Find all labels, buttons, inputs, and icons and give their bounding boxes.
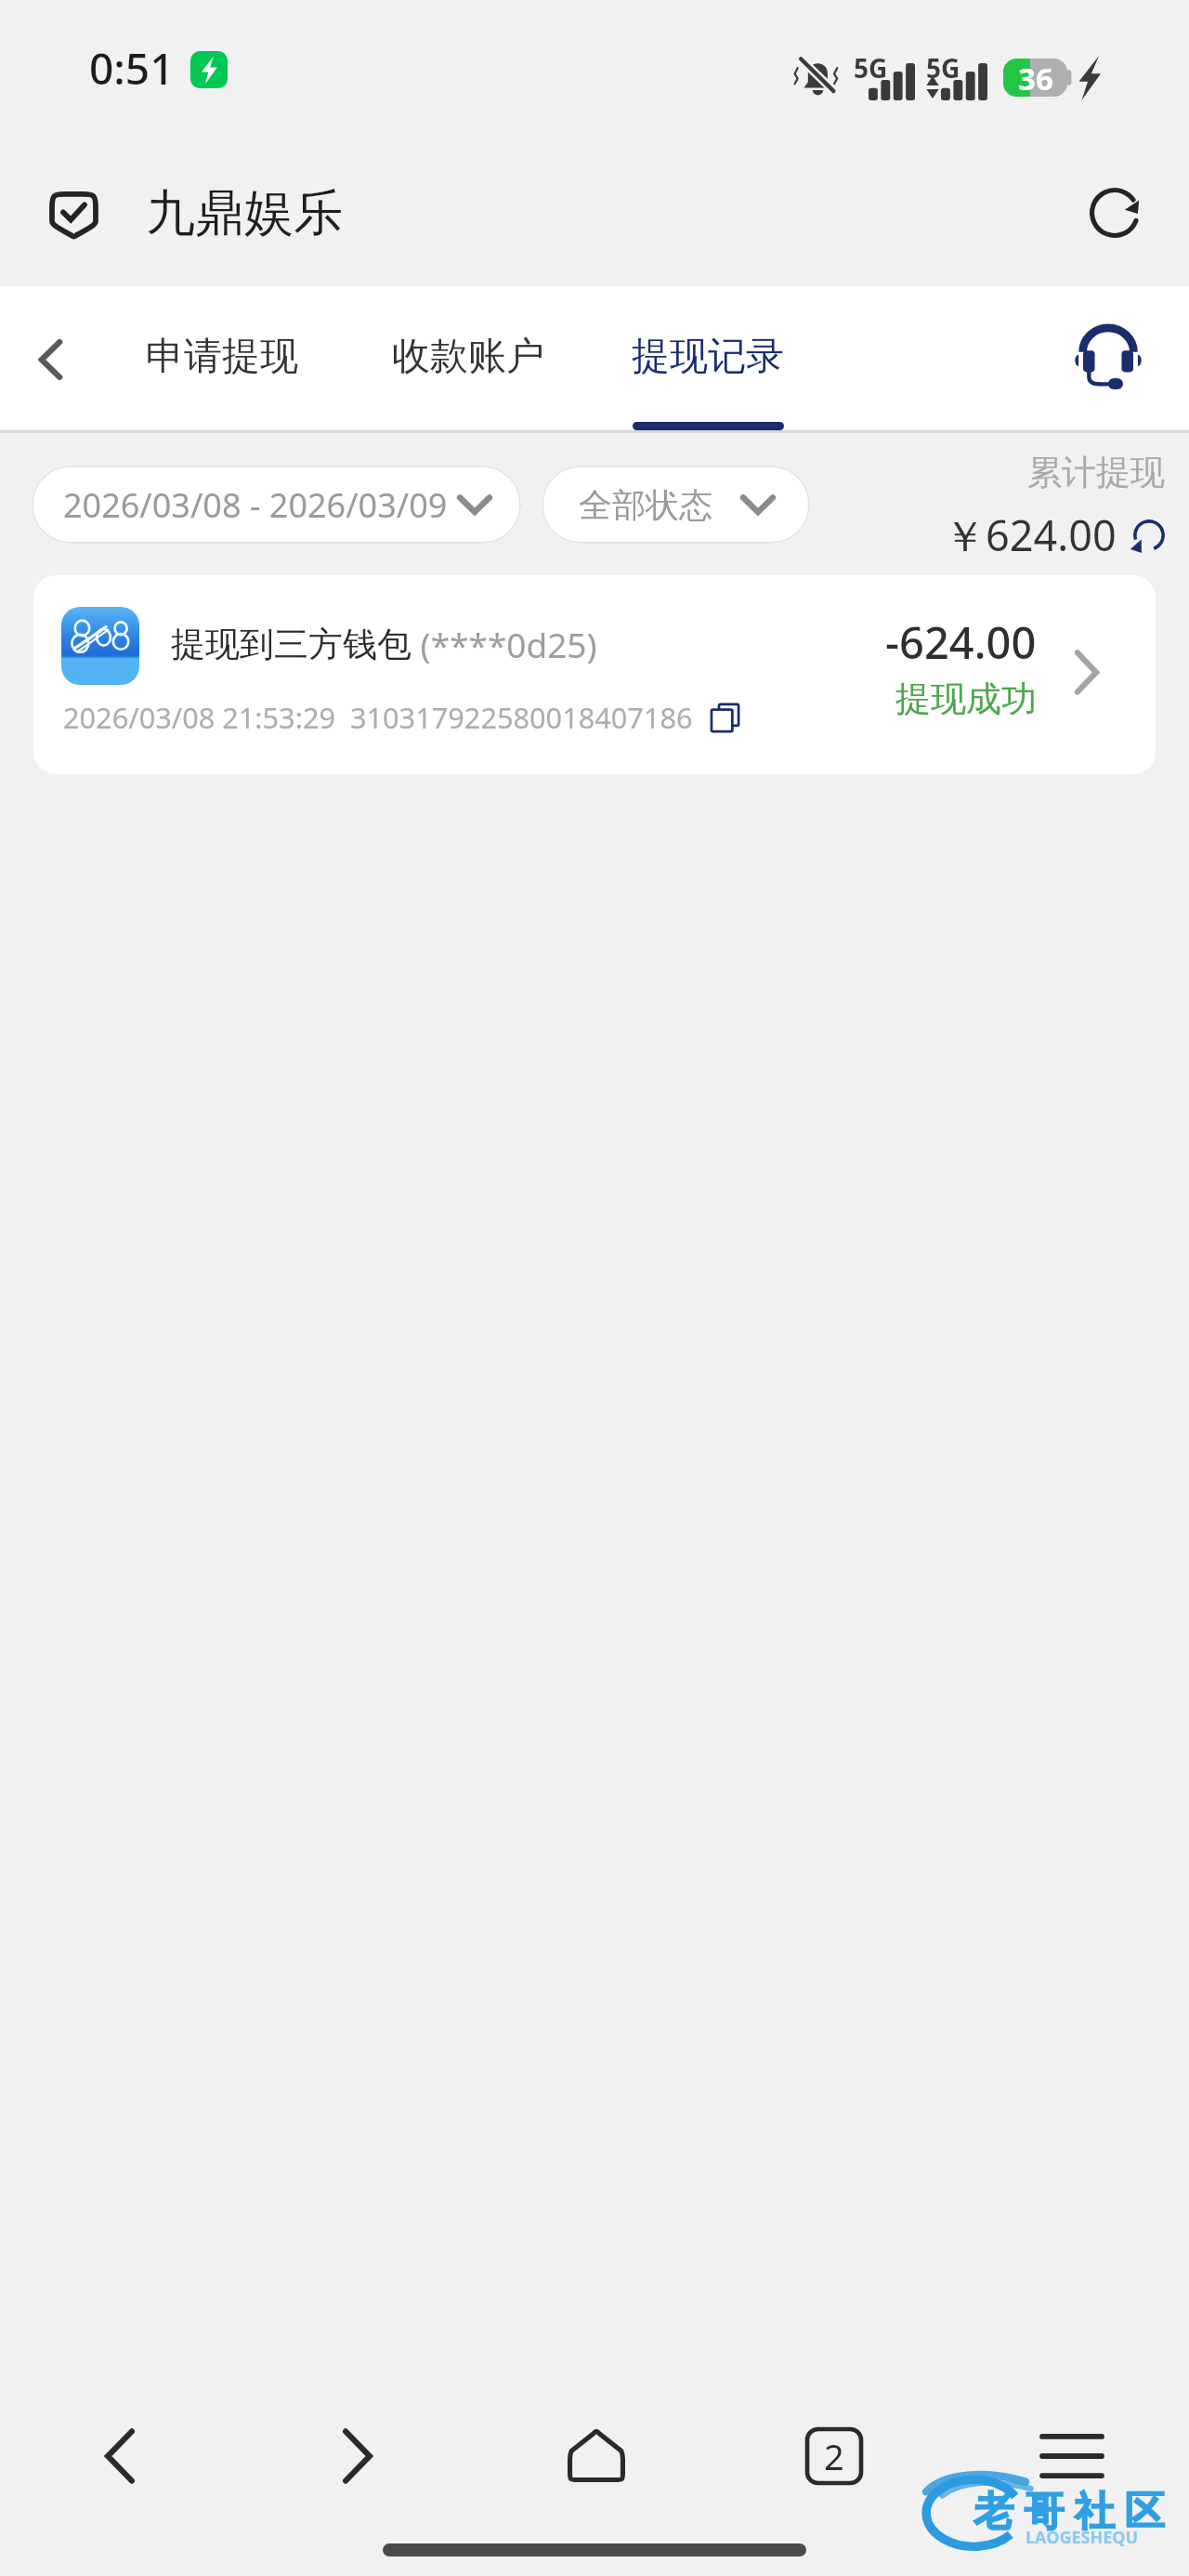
button[interactable]: Tabs bbox=[782, 2396, 886, 2517]
button[interactable]: Menu bbox=[1020, 2396, 1124, 2517]
staticText: 申请提现 bbox=[146, 333, 298, 381]
staticText: 5G bbox=[926, 50, 960, 85]
button[interactable]: Refresh bbox=[1078, 176, 1152, 250]
staticText: 提现到三方钱包 bbox=[171, 623, 412, 666]
staticText: (****0d25) bbox=[412, 621, 597, 667]
staticText: 老哥社区 bbox=[969, 2487, 1169, 2537]
button[interactable]: 收款账户 bbox=[392, 286, 544, 430]
button[interactable]: Customer service bbox=[1066, 317, 1150, 401]
button[interactable]: 2026/03/08 - 2026/03/09 bbox=[32, 466, 521, 544]
staticText: 2026/03/08 - 2026/03/09 bbox=[63, 482, 448, 528]
button[interactable]: Back bbox=[68, 2396, 172, 2517]
staticText: 九鼎娱乐 bbox=[146, 182, 343, 244]
button[interactable]: Back bbox=[13, 322, 87, 397]
staticText: 提现成功 bbox=[895, 677, 1037, 721]
staticText: ￥624.00 bbox=[944, 506, 1117, 563]
button[interactable]: Refresh total bbox=[1130, 516, 1169, 555]
button[interactable]: Copy order id bbox=[711, 703, 740, 732]
staticText: 5G bbox=[854, 50, 888, 85]
button[interactable]: Home bbox=[544, 2396, 648, 2517]
staticText: -624.00 bbox=[885, 612, 1037, 672]
button[interactable]: 申请提现 bbox=[146, 286, 298, 430]
staticText: 全部状态 bbox=[579, 484, 712, 526]
staticText: 0:51 bbox=[89, 39, 175, 98]
button[interactable]: 提现记录 bbox=[632, 286, 784, 430]
staticText: 2 bbox=[824, 2432, 844, 2480]
staticText: 提现记录 bbox=[632, 333, 784, 381]
button[interactable]: 全部状态 bbox=[542, 466, 810, 544]
staticText: 累计提现 bbox=[1027, 451, 1165, 494]
button[interactable]: 提现到三方钱包 bbox=[33, 575, 1156, 774]
staticText: 收款账户 bbox=[392, 333, 544, 381]
staticText: 36 bbox=[1018, 58, 1053, 96]
staticText: 2026/03/08 21:53:29 31031792258001840718… bbox=[63, 698, 693, 737]
button[interactable]: Forward bbox=[306, 2396, 410, 2517]
button[interactable]: Secure site bbox=[37, 177, 110, 249]
staticText: LAOGESHEQU bbox=[1026, 2526, 1139, 2549]
